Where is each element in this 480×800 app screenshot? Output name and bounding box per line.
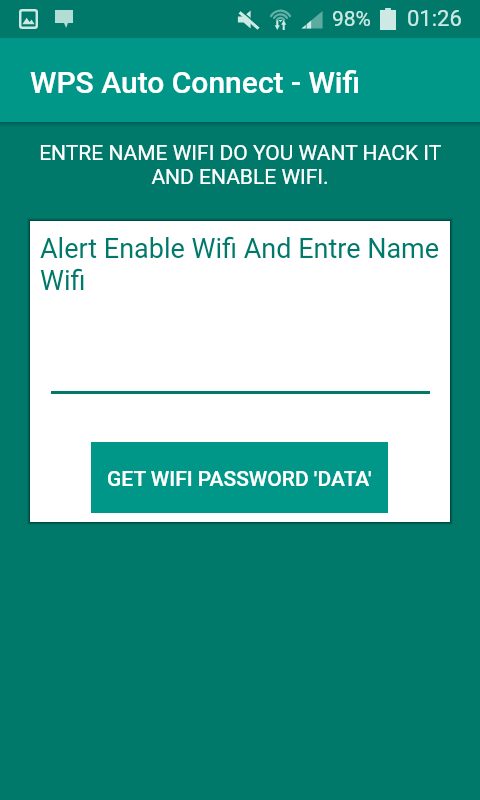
staticText: Alert Enable Wifi And Entre Name Wifi bbox=[40, 233, 441, 296]
staticText: WPS Auto Connect - Wifi bbox=[30, 65, 360, 100]
staticText: 98% bbox=[332, 7, 371, 32]
staticText: ENTRE NAME WIFI DO YOU WANT HACK IT AND … bbox=[26, 141, 454, 189]
staticText: GET WIFI PASSWORD 'DATA' bbox=[107, 467, 372, 492]
other: New message bbox=[55, 10, 73, 28]
other: Mobile signal strength bbox=[301, 9, 323, 29]
other: Wi-Fi connected bbox=[269, 9, 292, 30]
button[interactable]: Alert Enable Wifi And Entre Name Wifi bbox=[40, 225, 441, 394]
staticText: 01:26 bbox=[407, 6, 462, 32]
button[interactable]: GET WIFI PASSWORD 'DATA' bbox=[91, 442, 388, 513]
other: Battery 98 percent bbox=[380, 8, 396, 30]
other: Screenshot captured bbox=[19, 9, 38, 29]
other: Sound muted bbox=[237, 10, 259, 29]
